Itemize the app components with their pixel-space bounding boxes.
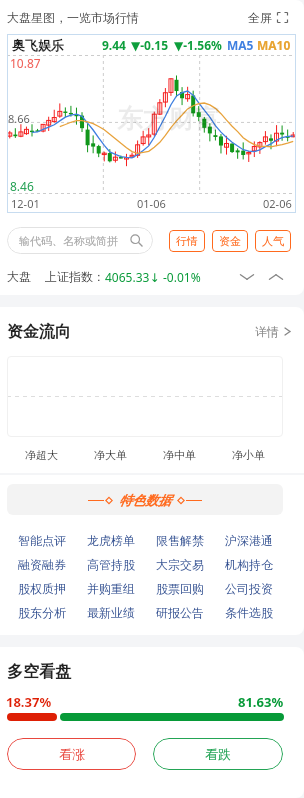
staticText: 看跌: [205, 746, 231, 762]
staticText: 研报公告: [156, 605, 204, 620]
staticText: 公司投资: [225, 581, 273, 596]
staticText: 输代码、名称或简拼: [19, 234, 118, 248]
button[interactable]: 大盘: [0, 261, 304, 292]
button[interactable]: 高管持股: [76, 552, 145, 576]
staticText: 并购重组: [87, 581, 135, 596]
button[interactable]: 融资融券: [7, 552, 76, 576]
staticText: 最新业绩: [87, 605, 135, 620]
staticText: 高管持股: [87, 557, 135, 572]
staticText: 净小单: [232, 448, 265, 462]
staticText: 净中单: [163, 448, 196, 462]
staticText: 4065.33↓: [105, 269, 160, 285]
button[interactable]: 沪深港通: [214, 528, 283, 552]
button[interactable]: 资金: [212, 230, 248, 252]
button[interactable]: Next: [266, 267, 286, 287]
staticText: 大盘: [7, 269, 31, 284]
button[interactable]: 股权质押: [7, 576, 76, 600]
staticText: 10.87: [10, 55, 41, 71]
staticText: 大盘星图，一览市场行情: [7, 10, 139, 25]
staticText: 沪深港通: [225, 533, 273, 548]
staticText: -0.01%: [163, 269, 201, 285]
button[interactable]: 看涨: [7, 738, 136, 770]
staticText: 条件选股: [225, 605, 273, 620]
staticText: 81.63%: [238, 693, 284, 711]
staticText: 特色数据: [119, 492, 171, 508]
staticText: 大宗交易: [156, 557, 204, 572]
staticText: 机构持仓: [225, 557, 273, 572]
staticText: 多空看盘: [7, 662, 71, 682]
staticText: 龙虎榜单: [87, 533, 135, 548]
staticText: 01-06: [137, 196, 166, 211]
button[interactable]: 大宗交易: [145, 552, 214, 576]
staticText: 资金: [219, 234, 241, 248]
button[interactable]: 股东分析: [7, 600, 76, 624]
staticText: 8.46: [10, 178, 34, 194]
button[interactable]: 最新业绩: [76, 600, 145, 624]
staticText: 东方财富: [117, 103, 221, 136]
staticText: ▼-1.56%: [174, 37, 222, 53]
staticText: MA10: [257, 37, 291, 53]
button[interactable]: 全屏: [246, 10, 290, 25]
staticText: 看涨: [59, 746, 85, 762]
staticText: 行情: [176, 234, 198, 248]
staticText: 股票回购: [156, 581, 204, 596]
staticText: 限售解禁: [156, 533, 204, 548]
staticText: 融资融券: [18, 557, 66, 572]
staticText: 人气: [262, 234, 284, 248]
button[interactable]: 条件选股: [214, 600, 283, 624]
button[interactable]: 公司投资: [214, 576, 283, 600]
staticText: 上证指数：: [45, 269, 105, 284]
other: Full screen: [277, 12, 288, 23]
staticText: ▼-0.15: [131, 37, 169, 53]
staticText: 全屏: [248, 10, 272, 25]
staticText: 资金流向: [7, 322, 71, 342]
button[interactable]: 人气: [255, 230, 291, 252]
staticText: 股权质押: [18, 581, 66, 596]
staticText: 净超大: [25, 448, 58, 462]
staticText: 详情: [255, 324, 279, 339]
button[interactable]: 看跌: [153, 738, 283, 770]
staticText: MA5: [227, 37, 254, 53]
staticText: 股东分析: [18, 605, 66, 620]
staticText: 18.37%: [6, 693, 52, 711]
staticText: 奥飞娱乐: [12, 37, 64, 53]
button[interactable]: 龙虎榜单: [76, 528, 145, 552]
staticText: 9.44: [102, 37, 126, 53]
button[interactable]: 行情: [169, 230, 205, 252]
button[interactable]: 研报公告: [145, 600, 214, 624]
button[interactable]: 限售解禁: [145, 528, 214, 552]
button[interactable]: Previous: [237, 267, 257, 287]
button[interactable]: 股票回购: [145, 576, 214, 600]
button[interactable]: 机构持仓: [214, 552, 283, 576]
staticText: 12-01: [11, 196, 40, 211]
button[interactable]: 输代码、名称或简拼: [7, 227, 153, 254]
button[interactable]: 详情: [255, 324, 292, 339]
button[interactable]: 智能点评: [7, 528, 76, 552]
staticText: 智能点评: [18, 533, 66, 548]
staticText: 02-06: [263, 196, 292, 211]
button[interactable]: 并购重组: [76, 576, 145, 600]
staticText: 净大单: [94, 448, 127, 462]
staticText: 8.66: [8, 111, 30, 126]
